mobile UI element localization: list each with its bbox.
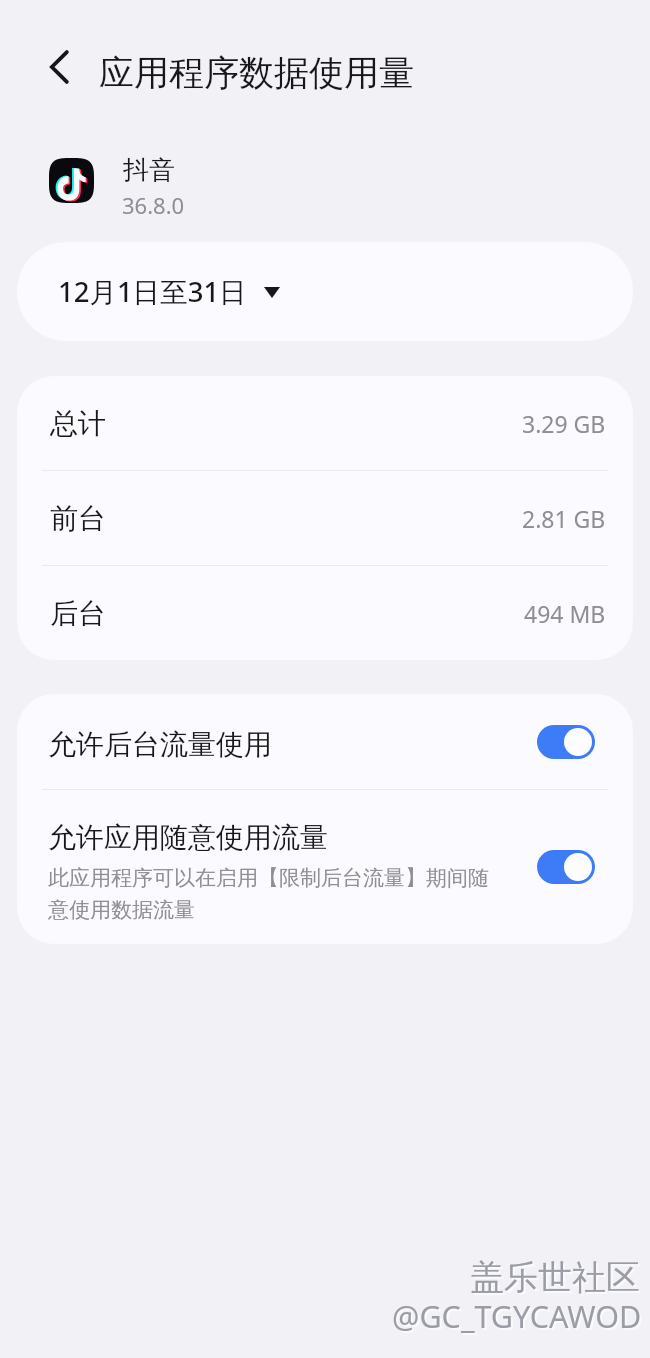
staticText: 36.8.0 [122, 190, 185, 220]
button[interactable]: 允许后台流量使用 [17, 694, 633, 789]
staticText: 12月1日至31日 [58, 273, 247, 311]
staticText: 允许应用随意使用流量 [48, 820, 328, 855]
staticText: 总计 [50, 406, 522, 441]
button[interactable]: 前台 [17, 471, 633, 565]
button[interactable]: 总计 [17, 376, 633, 470]
staticText: 前台 [50, 501, 522, 536]
staticText: 2.81 GB [522, 503, 606, 534]
staticText: 盖乐世社区 [472, 1258, 642, 1301]
staticText: 盖乐世社区 [470, 1256, 640, 1299]
button[interactable]: 12月1日至31日 [17, 242, 633, 341]
button[interactable]: 后台 [17, 566, 633, 660]
button[interactable]: Toggle [537, 725, 595, 759]
button[interactable]: Toggle [537, 850, 595, 884]
staticText: @GC_TGYCAWOD [394, 1297, 644, 1339]
staticText: 此应用程序可以在启用【限制后台流量】期间随意使用数据流量 [48, 865, 496, 923]
staticText: 允许后台流量使用 [48, 727, 537, 762]
staticText: 3.29 GB [522, 408, 606, 439]
staticText: 494 MB [524, 598, 606, 629]
staticText: 后台 [50, 596, 524, 631]
staticText: 应用程序数据使用量 [99, 51, 414, 95]
staticText: @GC_TGYCAWOD [392, 1295, 642, 1337]
staticText: 抖音 [123, 154, 175, 187]
button[interactable]: 允许应用随意使用流量 [17, 790, 633, 944]
button[interactable]: Back [32, 40, 86, 94]
